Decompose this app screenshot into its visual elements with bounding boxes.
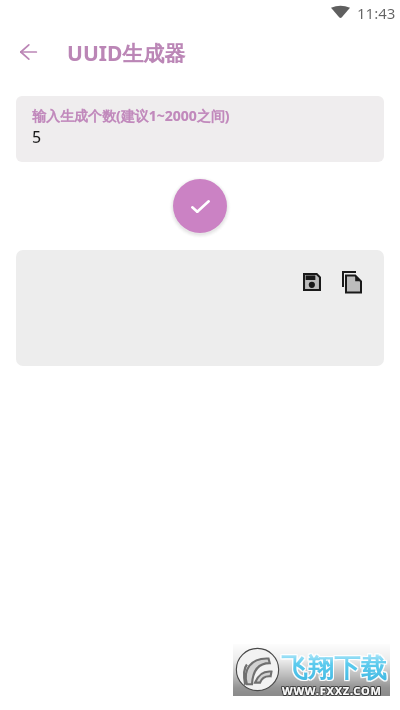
staticText: WWW.FXXZ.COM (282, 683, 382, 698)
button[interactable]: Save (300, 270, 324, 294)
staticText: 飞翔下载 (281, 652, 387, 685)
button[interactable]: Back (4, 28, 52, 76)
staticText: WWW.FXXZ.COM (281, 683, 381, 698)
staticText: 飞翔下载 (282, 652, 388, 685)
staticText: 飞翔下载 (281, 651, 387, 684)
staticText: 5 (32, 126, 42, 148)
button[interactable]: Generate (173, 179, 227, 233)
staticText: WWW.FXXZ.COM (283, 684, 383, 699)
staticText: 飞翔下载 (280, 651, 386, 684)
staticText: 飞翔下载 (280, 653, 386, 686)
staticText: WWW.FXXZ.COM (281, 684, 381, 699)
staticText: 飞翔下载 (282, 653, 388, 686)
staticText: 输入生成个数(建议1~2000之间) (32, 106, 230, 125)
staticText: WWW.FXXZ.COM (282, 684, 382, 699)
staticText: 11:43 (357, 3, 396, 23)
button[interactable]: Copy (339, 270, 363, 294)
staticText: WWW.FXXZ.COM (283, 682, 383, 697)
staticText: 飞翔下载 (280, 652, 386, 685)
staticText: UUID生成器 (67, 39, 186, 68)
staticText: 飞翔下载 (282, 651, 388, 684)
staticText: WWW.FXXZ.COM (281, 682, 381, 697)
staticText: WWW.FXXZ.COM (282, 682, 382, 697)
staticText: 飞翔下载 (281, 653, 387, 686)
staticText: WWW.FXXZ.COM (283, 683, 383, 698)
button[interactable]: 输入生成个数(建议1~2000之间) (16, 96, 384, 162)
